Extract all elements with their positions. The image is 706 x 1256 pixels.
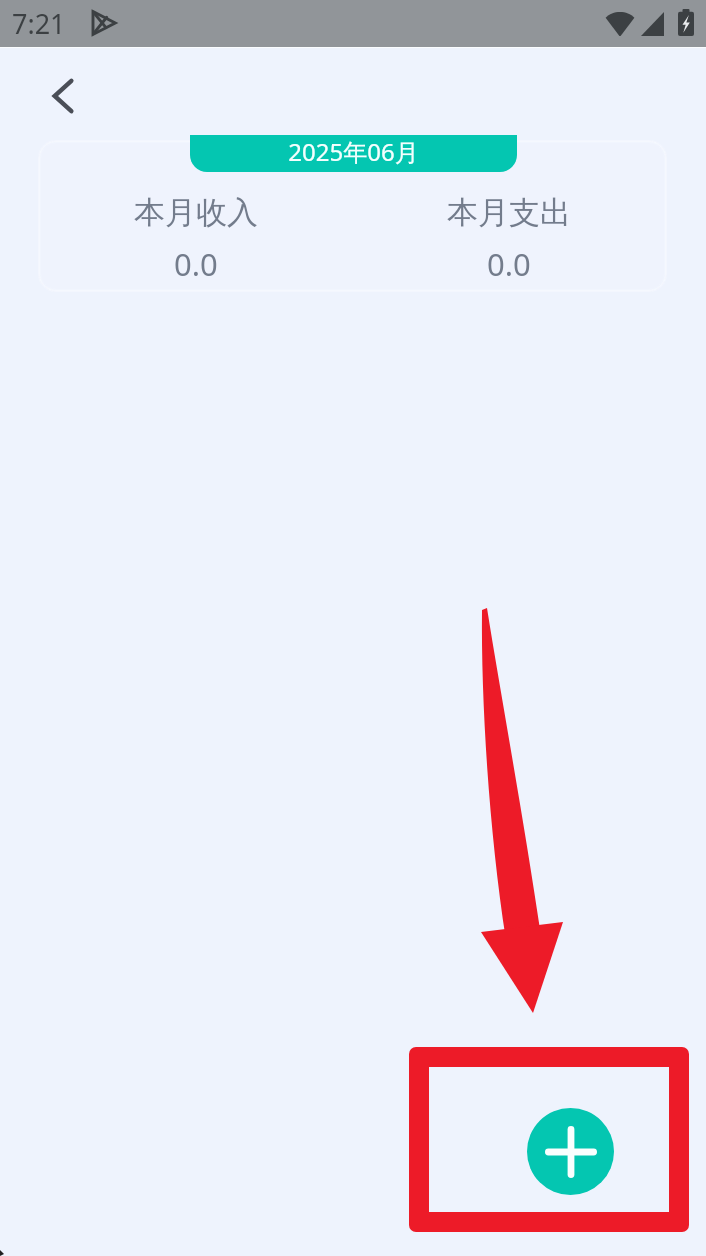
button[interactable]: 本月收入	[40, 142, 665, 290]
staticText: 7:21	[12, 5, 66, 42]
staticText: 本月支出	[447, 193, 571, 232]
staticText: 0.0	[174, 243, 218, 285]
button[interactable]: Add	[527, 1108, 614, 1195]
button[interactable]: 2025年06月	[190, 135, 517, 172]
button[interactable]: Back	[38, 71, 88, 121]
staticText: 2025年06月	[288, 135, 419, 168]
staticText: 本月收入	[134, 193, 258, 232]
staticText: 0.0	[487, 243, 531, 285]
